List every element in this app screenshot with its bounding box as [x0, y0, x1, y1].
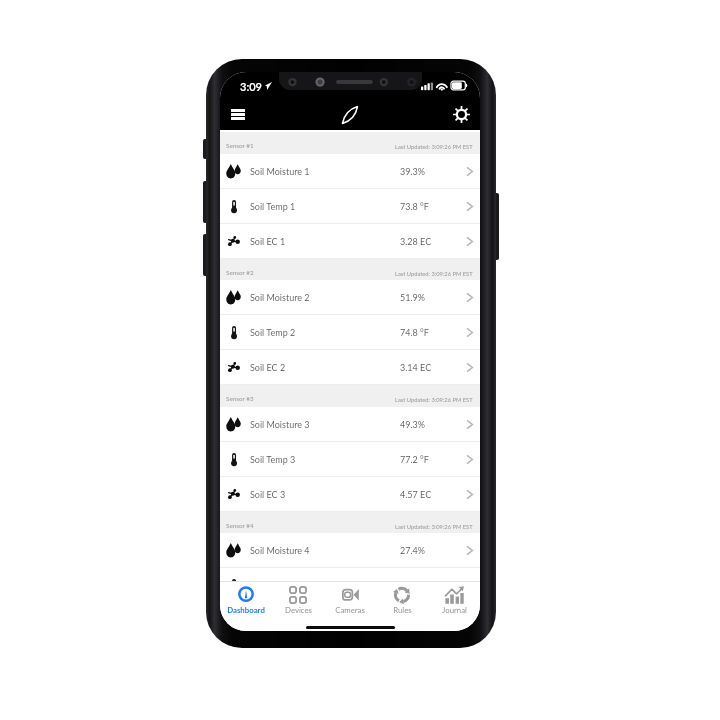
staticText: Sensor #1 — [226, 142, 254, 150]
button[interactable]: Soil Moisture 1 — [220, 154, 480, 188]
staticText: Cameras — [335, 605, 365, 614]
staticText: Soil Moisture 4 — [250, 545, 310, 556]
staticText: 51.9% — [400, 292, 459, 303]
button[interactable]: Soil EC 1 — [220, 224, 480, 258]
button[interactable]: Soil Moisture 3 — [220, 407, 480, 441]
button[interactable]: Dashboard — [220, 582, 272, 614]
staticText: 77.2 °F — [400, 454, 459, 465]
button[interactable]: Cameras — [324, 582, 376, 614]
button[interactable]: Home — [337, 102, 363, 128]
staticText: Journal — [442, 605, 467, 614]
staticText: 74.8 °F — [400, 327, 459, 338]
button[interactable]: Soil Temp 2 — [220, 315, 480, 349]
staticText: 39.3% — [400, 166, 459, 177]
staticText: Sensor #3 — [226, 395, 254, 403]
button[interactable]: Journal — [428, 582, 480, 614]
button[interactable]: Soil EC 2 — [220, 350, 480, 384]
staticText: Soil Temp 2 — [250, 327, 296, 338]
staticText: 4.57 EC — [400, 489, 459, 500]
staticText: Last Updated: 3:09:26 PM EST — [395, 523, 473, 530]
button[interactable]: Menu — [224, 100, 252, 128]
button[interactable]: Soil Moisture 2 — [220, 280, 480, 314]
button[interactable]: Soil Moisture 4 — [220, 533, 480, 567]
staticText: 3.28 EC — [400, 236, 459, 247]
staticText: Soil EC 3 — [250, 489, 286, 500]
staticText: Sensor #4 — [226, 522, 254, 530]
staticText: 3.14 EC — [400, 362, 459, 373]
button[interactable]: Devices — [272, 582, 324, 614]
staticText: Soil Moisture 2 — [250, 292, 310, 303]
staticText: Soil EC 1 — [250, 236, 286, 247]
button[interactable]: Soil Temp 3 — [220, 442, 480, 476]
button[interactable]: Soil Temp 1 — [220, 189, 480, 223]
staticText: Devices — [285, 605, 312, 614]
staticText: Last Updated: 3:09:26 PM EST — [395, 270, 473, 277]
staticText: 3:09 — [240, 80, 262, 93]
staticText: Soil Temp 3 — [250, 454, 296, 465]
staticText: Sensor #2 — [226, 269, 254, 277]
staticText: Soil Temp 1 — [250, 201, 296, 212]
staticText: Last Updated: 3:09:26 PM EST — [395, 396, 473, 403]
button[interactable]: Settings — [447, 100, 475, 128]
staticText: 49.3% — [400, 419, 459, 430]
button[interactable]: Soil Temp 4 — [220, 568, 480, 581]
staticText: 27.4% — [400, 545, 459, 556]
staticText: Last Updated: 3:09:26 PM EST — [395, 143, 473, 150]
staticText: Dashboard — [227, 605, 265, 614]
staticText: Soil Moisture 1 — [250, 166, 310, 177]
staticText: 73.8 °F — [400, 201, 459, 212]
staticText: Rules — [393, 605, 412, 614]
staticText: Soil EC 2 — [250, 362, 286, 373]
staticText: Soil Moisture 3 — [250, 419, 310, 430]
button[interactable]: Soil EC 3 — [220, 477, 480, 511]
button[interactable]: Rules — [376, 582, 428, 614]
